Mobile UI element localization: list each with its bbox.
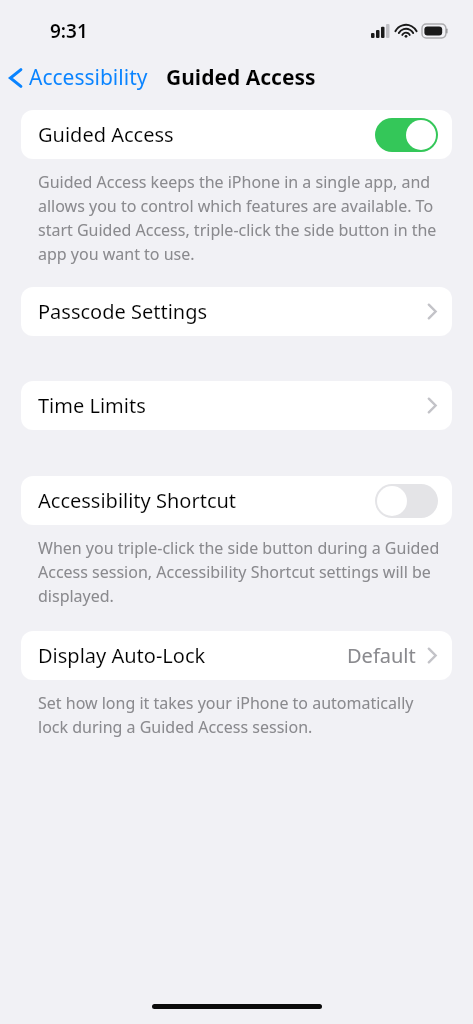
staticText: When you triple-click the side button du… <box>38 537 445 607</box>
staticText: Default <box>347 642 416 669</box>
staticText: 9:31 <box>50 18 88 44</box>
staticText: Display Auto-Lock <box>38 642 347 669</box>
button[interactable]: Time Limits <box>21 381 452 430</box>
button[interactable]: Passcode Settings <box>21 287 452 336</box>
staticText: Accessibility <box>29 63 148 92</box>
button[interactable]: Accessibility Shortcut <box>21 476 452 525</box>
staticText: Accessibility Shortcut <box>38 487 375 514</box>
staticText: Time Limits <box>38 392 427 419</box>
staticText: Guided Access <box>38 121 375 148</box>
button[interactable]: Guided Access <box>21 110 452 159</box>
staticText: Set how long it takes your iPhone to aut… <box>38 692 445 738</box>
staticText: Guided Access keeps the iPhone in a sing… <box>38 171 445 265</box>
button[interactable]: On <box>375 118 438 152</box>
button[interactable]: Off <box>375 484 438 518</box>
button[interactable]: Back <box>0 59 154 96</box>
staticText: Passcode Settings <box>38 298 427 325</box>
staticText: Guided Access <box>166 63 316 92</box>
other: Back <box>8 67 23 89</box>
button[interactable]: Display Auto-Lock <box>21 631 452 680</box>
